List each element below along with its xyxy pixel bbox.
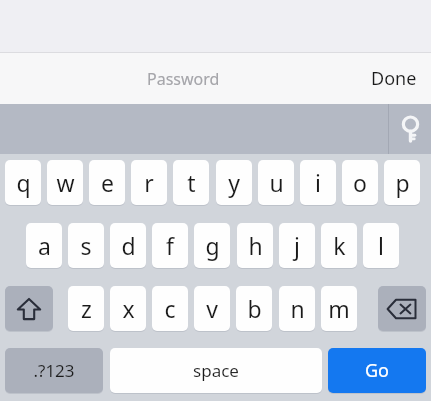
staticText: k <box>333 230 346 261</box>
button[interactable]: b <box>236 286 272 331</box>
button[interactable]: Done <box>365 60 423 97</box>
staticText: g <box>205 230 220 261</box>
staticText: Password <box>147 68 220 90</box>
button[interactable]: y <box>216 160 252 205</box>
button[interactable]: space <box>110 348 322 393</box>
staticText: j <box>294 230 300 261</box>
staticText: e <box>101 167 114 198</box>
staticText: s <box>80 230 92 261</box>
button[interactable]: w <box>47 160 83 205</box>
staticText: b <box>247 293 262 324</box>
button[interactable]: s <box>68 223 104 268</box>
button[interactable]: m <box>321 286 357 331</box>
button[interactable]: a <box>26 223 62 268</box>
button[interactable]: Go <box>328 348 426 393</box>
button[interactable]: g <box>194 223 230 268</box>
staticText: o <box>353 167 367 198</box>
staticText: x <box>122 293 135 324</box>
staticText: m <box>328 293 350 324</box>
button[interactable]: h <box>237 223 273 268</box>
staticText: .?123 <box>33 359 75 382</box>
staticText: p <box>395 167 410 198</box>
staticText: space <box>193 359 239 382</box>
staticText: l <box>378 230 384 261</box>
staticText: v <box>206 293 218 324</box>
button[interactable]: k <box>321 223 357 268</box>
button[interactable]: x <box>110 286 146 331</box>
button[interactable]: v <box>194 286 230 331</box>
button[interactable]: f <box>152 223 188 268</box>
button[interactable]: j <box>279 223 315 268</box>
staticText: Done <box>371 66 417 91</box>
staticText: y <box>228 167 240 198</box>
button[interactable]: p <box>384 160 420 205</box>
button[interactable]: l <box>363 223 399 268</box>
button[interactable]: c <box>152 286 188 331</box>
staticText: q <box>16 167 31 198</box>
staticText: z <box>81 293 92 324</box>
staticText: a <box>38 230 51 261</box>
staticText: Go <box>365 358 389 383</box>
button[interactable]: o <box>342 160 378 205</box>
button[interactable]: Shift <box>5 286 53 331</box>
staticText: t <box>187 167 196 198</box>
staticText: r <box>144 167 154 198</box>
button[interactable]: n <box>279 286 315 331</box>
button[interactable]: i <box>300 160 336 205</box>
button[interactable]: Passwords <box>389 104 431 154</box>
staticText: c <box>164 293 176 324</box>
staticText: h <box>248 230 263 261</box>
button[interactable]: e <box>89 160 125 205</box>
button[interactable]: t <box>173 160 209 205</box>
button[interactable]: u <box>258 160 294 205</box>
staticText: n <box>290 293 305 324</box>
staticText: w <box>56 167 75 198</box>
button[interactable]: z <box>68 286 104 331</box>
staticText: d <box>121 230 136 261</box>
staticText: i <box>315 167 321 198</box>
staticText: f <box>166 230 174 261</box>
staticText: u <box>269 167 284 198</box>
button[interactable]: Backspace <box>378 286 426 331</box>
button[interactable]: r <box>131 160 167 205</box>
button[interactable]: d <box>110 223 146 268</box>
button[interactable]: .?123 <box>5 348 103 393</box>
button[interactable]: q <box>5 160 41 205</box>
